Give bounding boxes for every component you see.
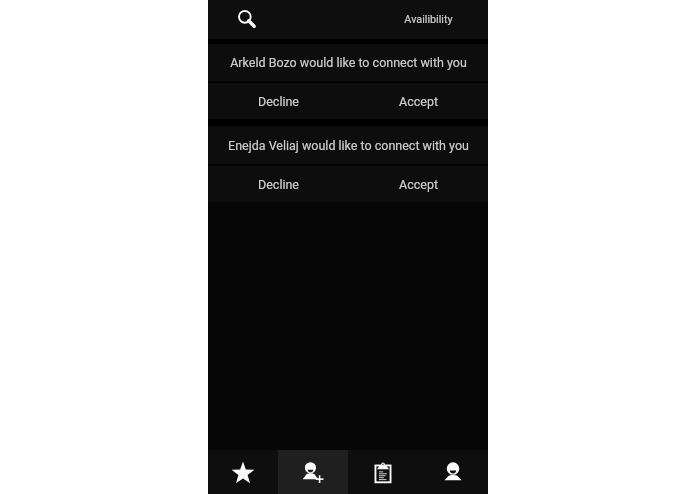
button[interactable]: Add contact (278, 450, 348, 494)
button[interactable]: Search (208, 0, 268, 39)
button[interactable]: Favorites (208, 450, 278, 494)
staticText: Decline (258, 177, 299, 192)
button[interactable]: Arkeld Bozo would like to connect with y… (208, 44, 488, 81)
button[interactable]: Notes (348, 450, 418, 494)
staticText: Enejda Veliaj would like to connect with… (228, 138, 469, 153)
button[interactable]: Profile (418, 450, 488, 494)
button[interactable]: Availibility (388, 0, 488, 39)
button[interactable]: Accept (348, 83, 488, 119)
button[interactable]: Decline (208, 83, 348, 119)
button[interactable]: Decline (208, 166, 348, 202)
staticText: Accept (399, 177, 438, 192)
staticText: Arkeld Bozo would like to connect with y… (230, 55, 467, 70)
button[interactable]: Accept (348, 166, 488, 202)
staticText: Decline (258, 94, 299, 109)
staticText: Accept (399, 94, 438, 109)
button[interactable]: Enejda Veliaj would like to connect with… (208, 126, 488, 164)
staticText: Availibility (404, 13, 453, 26)
